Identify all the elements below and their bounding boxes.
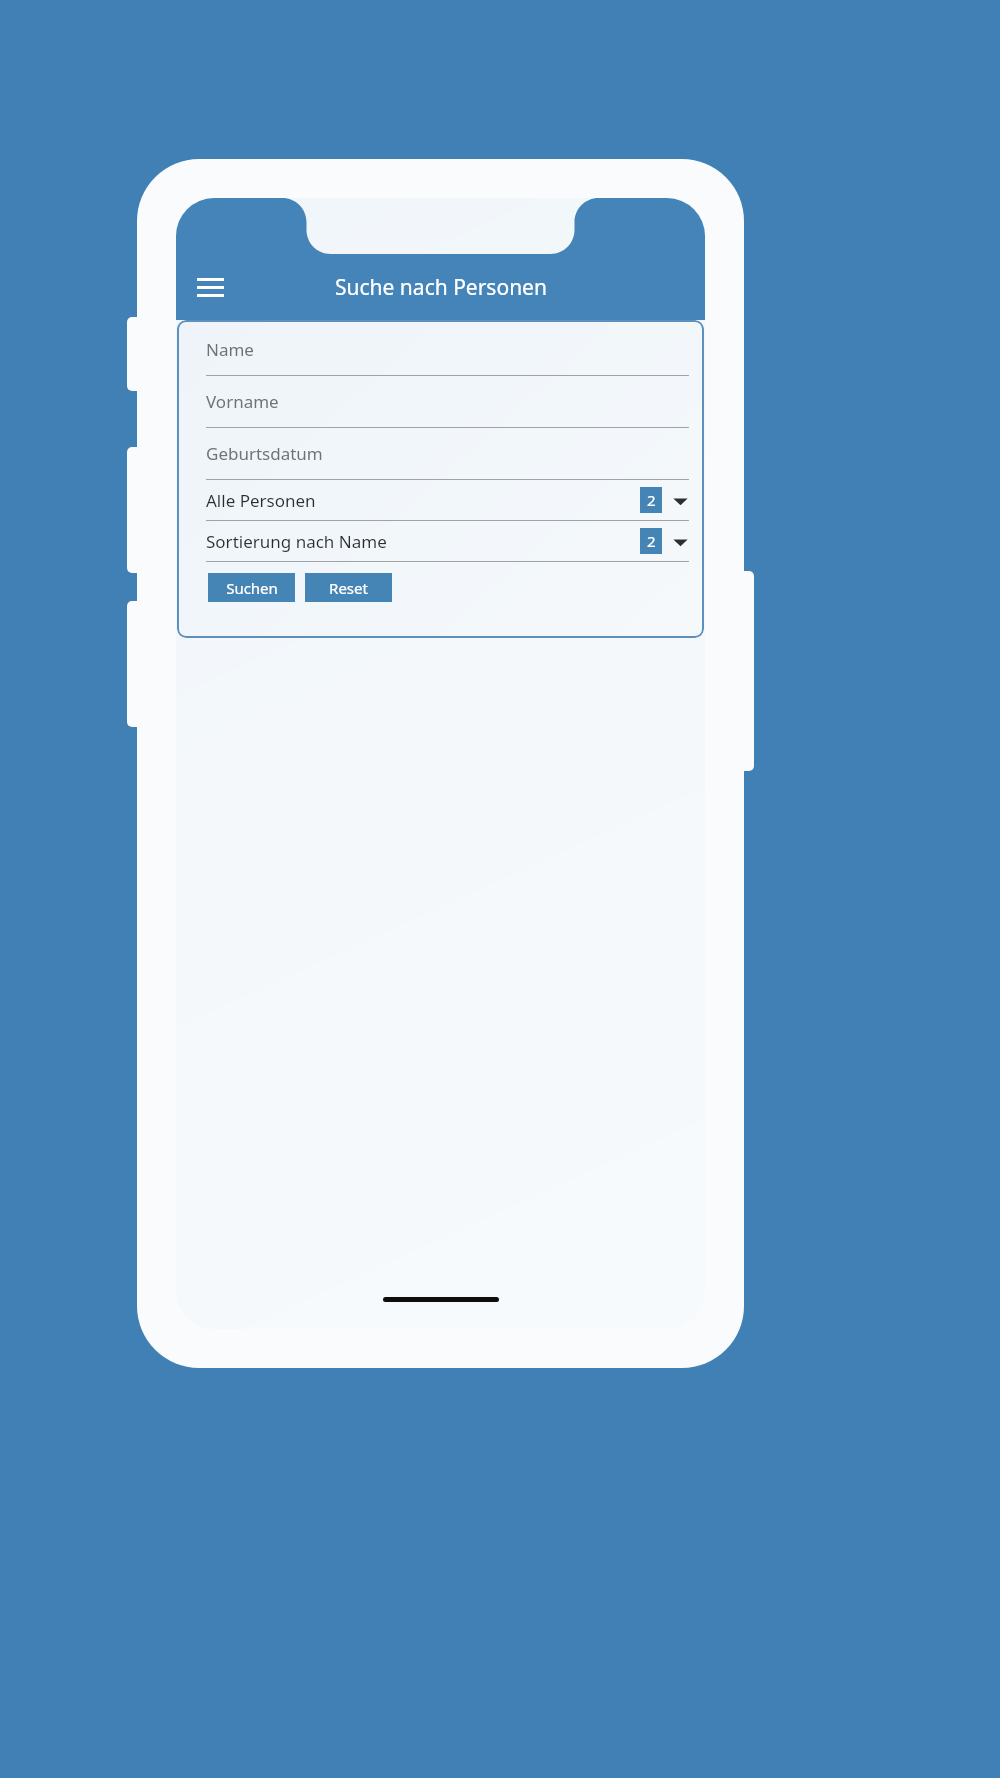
staticText: Suche nach Personen <box>335 273 547 302</box>
other: Expand <box>672 533 689 550</box>
staticText: Name <box>206 338 254 361</box>
staticText: Alle Personen <box>206 489 316 512</box>
button[interactable]: Menu <box>182 259 238 315</box>
staticText: Geburtsdatum <box>206 442 323 465</box>
button[interactable]: Sortierung nach Name <box>191 521 689 561</box>
button[interactable]: Vorname <box>191 376 689 427</box>
staticText: Sortierung nach Name <box>206 530 387 553</box>
button[interactable]: Geburtsdatum <box>191 428 689 479</box>
staticText: 2 <box>647 490 656 510</box>
staticText: Reset <box>329 578 368 598</box>
staticText: Vorname <box>206 390 279 413</box>
button[interactable]: Suchen <box>208 573 295 602</box>
button[interactable]: Alle Personen <box>191 480 689 520</box>
button[interactable]: Reset <box>305 573 392 602</box>
staticText: 2 <box>647 531 656 551</box>
button[interactable]: Name <box>191 324 689 375</box>
staticText: Suchen <box>226 578 278 598</box>
other: Expand <box>672 492 689 509</box>
